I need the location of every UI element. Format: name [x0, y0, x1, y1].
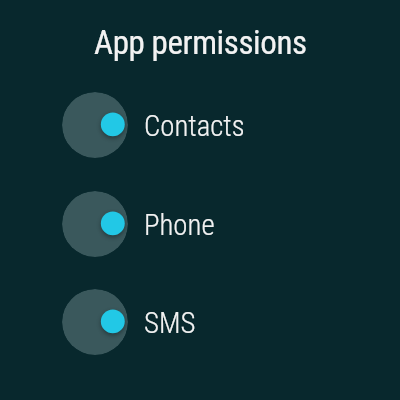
button[interactable]: Toggle SMS permission, on [62, 289, 128, 355]
button[interactable]: Toggle Phone permission, on [62, 191, 128, 257]
staticText: Contacts [144, 109, 245, 143]
button[interactable]: Toggle Contacts permission, on [0, 84, 400, 166]
staticText: SMS [144, 306, 196, 340]
staticText: App permissions [94, 23, 307, 62]
button[interactable]: Toggle SMS permission, on [0, 281, 400, 363]
staticText: Phone [144, 208, 215, 242]
button[interactable]: Toggle Contacts permission, on [62, 92, 128, 158]
button[interactable]: Toggle Phone permission, on [0, 183, 400, 265]
